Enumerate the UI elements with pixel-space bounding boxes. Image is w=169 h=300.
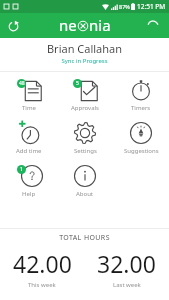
staticText: 32.00 [97,248,156,279]
button[interactable]: Settings [57,115,113,158]
staticText: Settings [74,147,97,155]
staticText: Time [22,104,36,112]
button[interactable]: Suggestions [113,115,169,158]
button[interactable]: Syncing [145,18,161,34]
staticText: Timers [131,104,151,112]
staticText: About [76,190,94,198]
staticText: nia [89,15,111,35]
staticText: 42.00 [13,248,72,279]
button[interactable]: 1 [0,158,57,201]
staticText: Suggestions [124,147,159,155]
staticText: Approvals [71,104,99,112]
button[interactable]: 48 [0,72,57,115]
staticText: Help [22,190,36,198]
staticText: Add time [16,147,42,155]
button[interactable]: About [57,158,113,201]
button[interactable]: Timers [113,72,169,115]
button[interactable]: Refresh [3,16,23,36]
staticText: Brian Callahan [0,41,169,56]
button[interactable]: Add time [0,115,57,158]
staticText: 87% [119,3,130,10]
staticText: This week [28,281,56,289]
staticText: 1 [20,166,23,173]
staticText: ne [59,15,77,35]
staticText: 12:51 PM [137,2,166,11]
staticText: Sync in Progress [0,57,169,65]
staticText: TOTAL HOURS [0,233,169,243]
staticText: 48 [19,80,25,87]
staticText: Last week [113,281,141,289]
staticText: 5 [76,80,79,87]
button[interactable]: 5 [57,72,113,115]
